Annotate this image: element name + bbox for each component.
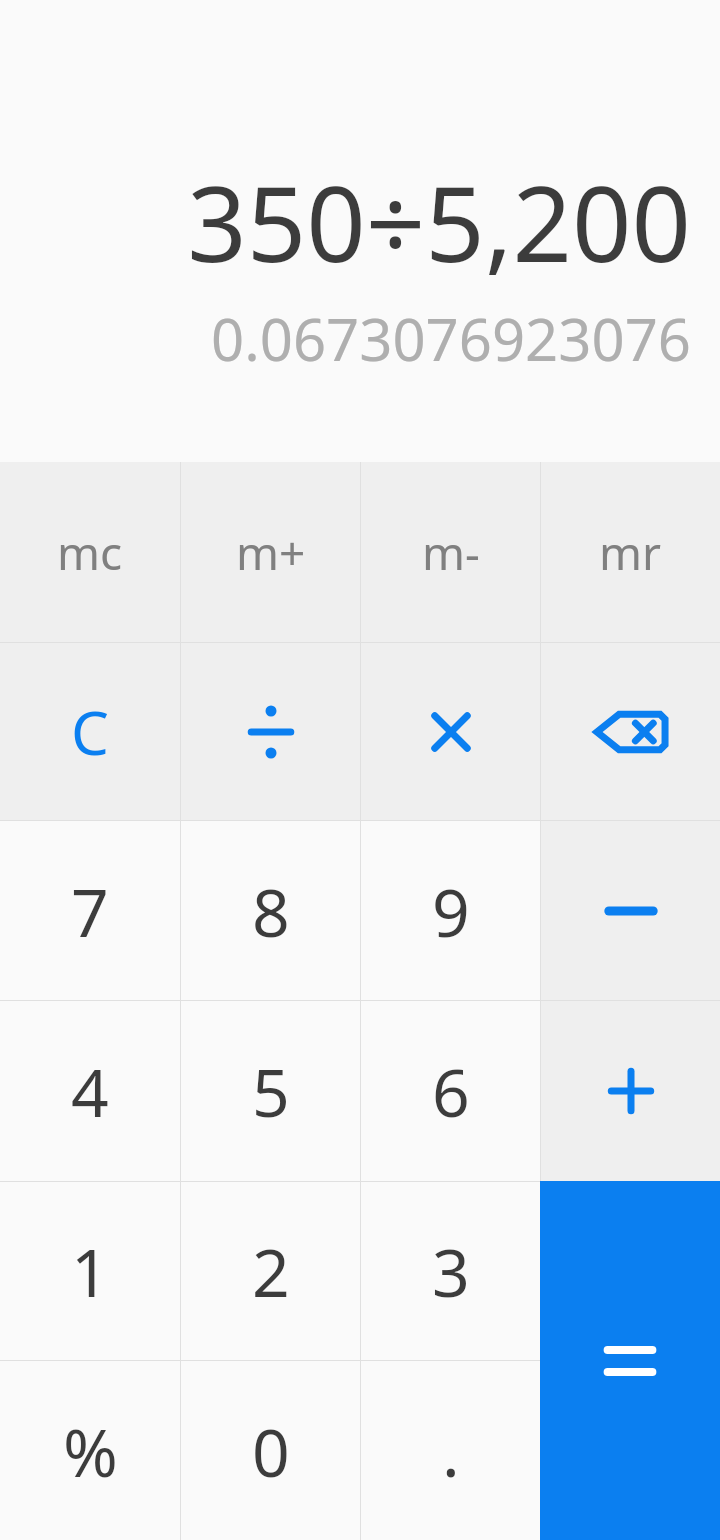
staticText: 0 <box>252 1406 290 1496</box>
button[interactable]: . <box>361 1361 540 1540</box>
staticText: 7 <box>71 866 109 956</box>
staticText: C <box>71 691 109 773</box>
button[interactable]: Multiply <box>361 643 540 820</box>
staticText: m+ <box>236 521 306 584</box>
button[interactable]: mr <box>541 462 720 642</box>
staticText: 3 <box>432 1226 470 1316</box>
button[interactable]: 1 <box>0 1182 180 1360</box>
button[interactable]: Equals <box>540 1181 720 1540</box>
staticText: 1 <box>71 1226 109 1316</box>
button[interactable]: 7 <box>0 821 180 1000</box>
staticText: mr <box>599 521 662 584</box>
staticText: mc <box>57 521 123 584</box>
button[interactable]: 4 <box>0 1001 180 1181</box>
button[interactable]: 5 <box>181 1001 360 1181</box>
staticText: 2 <box>252 1226 290 1316</box>
button[interactable]: m+ <box>181 462 360 642</box>
staticText: 9 <box>432 866 470 956</box>
button[interactable]: Plus <box>541 1001 720 1181</box>
staticText: . <box>442 1406 460 1496</box>
button[interactable]: 0 <box>181 1361 360 1540</box>
button[interactable]: mc <box>0 462 180 642</box>
button[interactable]: 8 <box>181 821 360 1000</box>
button[interactable]: 3 <box>361 1182 540 1360</box>
button[interactable]: 9 <box>361 821 540 1000</box>
button[interactable]: Backspace <box>541 643 720 820</box>
staticText: 350÷5,200 <box>187 151 691 293</box>
button[interactable]: % <box>0 1361 180 1540</box>
staticText: 8 <box>252 866 290 956</box>
button[interactable]: Minus <box>541 821 720 1000</box>
staticText: 5 <box>252 1046 290 1136</box>
staticText: % <box>63 1406 118 1496</box>
button[interactable]: 2 <box>181 1182 360 1360</box>
staticText: 4 <box>71 1046 109 1136</box>
button[interactable]: m- <box>361 462 540 642</box>
button[interactable]: 6 <box>361 1001 540 1181</box>
button[interactable]: Divide <box>181 643 360 820</box>
staticText: 6 <box>432 1046 470 1136</box>
staticText: 0.0673076923076 <box>210 299 691 378</box>
staticText: m- <box>422 521 480 584</box>
button[interactable]: C <box>0 643 180 820</box>
